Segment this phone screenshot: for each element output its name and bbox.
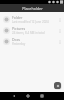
button[interactable]: More options <box>57 25 63 36</box>
button[interactable]: Back <box>7 92 21 100</box>
staticText: Last modified 12 June 2024 <box>12 20 49 24</box>
button[interactable]: Folder <box>0 14 64 25</box>
button[interactable]: More options <box>57 14 63 25</box>
button[interactable]: Home <box>21 92 35 100</box>
button[interactable]: Create <box>54 82 61 89</box>
staticText: Yesterday <box>12 42 26 46</box>
staticText: Docs <box>12 37 21 42</box>
button[interactable]: Recents <box>35 92 49 100</box>
staticText: Pictures <box>12 26 26 31</box>
staticText: Folder <box>12 15 23 20</box>
staticText: Placeholder <box>22 6 43 11</box>
button[interactable]: More options <box>57 36 63 47</box>
button[interactable]: Pictures <box>0 25 64 36</box>
button[interactable]: Docs <box>0 36 64 47</box>
staticText: 24 items, 8.4 MB in total <box>12 31 45 35</box>
